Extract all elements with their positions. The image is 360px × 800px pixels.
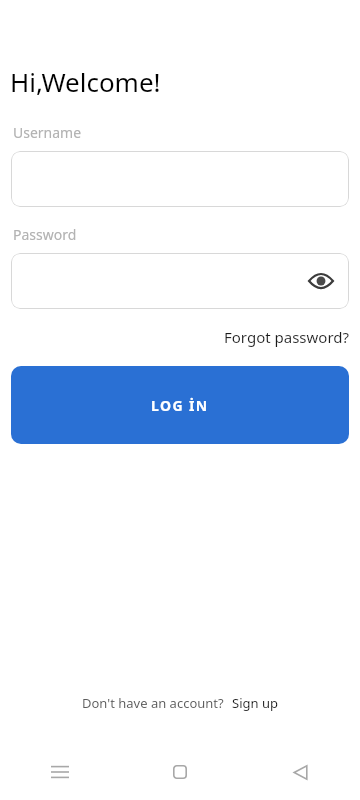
button[interactable]: Sign up (231, 692, 279, 714)
button[interactable]: Home (120, 752, 240, 792)
button[interactable]: Recent apps (0, 752, 120, 792)
staticText: Password (13, 225, 77, 244)
staticText: Hi,Welcome! (10, 64, 161, 99)
staticText: LOG İN (151, 396, 209, 415)
button[interactable]: Show password (303, 263, 339, 299)
staticText: Username (13, 123, 82, 142)
staticText: Sign up (232, 694, 278, 712)
button[interactable] (11, 151, 349, 207)
button[interactable]: Show password (11, 253, 349, 309)
button[interactable]: Forgot password? (224, 325, 360, 349)
staticText: Don't have an account? (82, 694, 224, 712)
button[interactable]: Back (240, 752, 360, 792)
button[interactable]: LOG İN (11, 366, 349, 444)
